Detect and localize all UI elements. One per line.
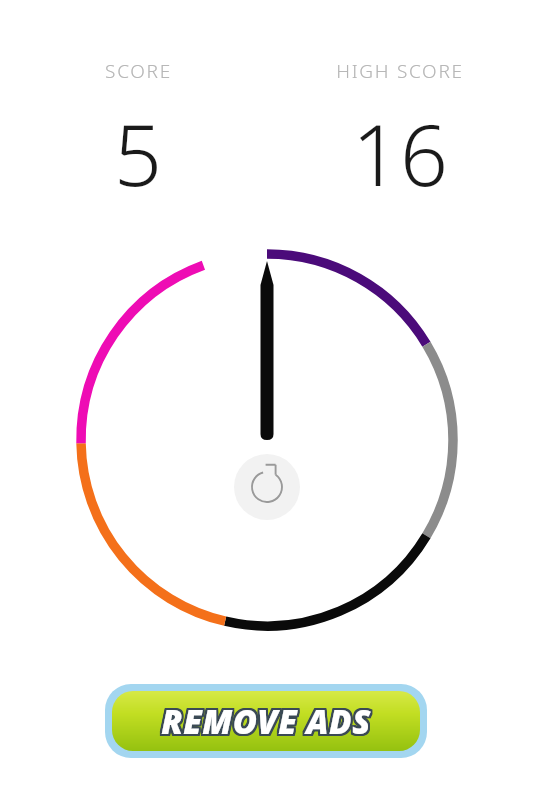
staticText: REMOVE ADS <box>161 697 371 742</box>
staticText: REMOVE ADS <box>159 697 369 742</box>
staticText: 16 <box>352 96 448 210</box>
staticText: REMOVE ADS <box>161 699 371 744</box>
staticText: REMOVE ADS <box>163 698 373 743</box>
staticText: REMOVE ADS <box>160 697 370 742</box>
staticText: 5 <box>114 96 162 210</box>
staticText: REMOVE ADS <box>159 699 369 744</box>
staticText: REMOVE ADS <box>159 698 369 743</box>
staticText: REMOVE ADS <box>163 697 373 742</box>
staticText: REMOVE ADS <box>159 700 369 745</box>
staticText: REMOVE ADS <box>162 697 372 742</box>
staticText: REMOVE ADS <box>162 701 372 746</box>
staticText: SCORE <box>105 58 172 84</box>
staticText: REMOVE ADS <box>163 701 373 746</box>
staticText: REMOVE ADS <box>161 701 371 746</box>
staticText: REMOVE ADS <box>163 700 373 745</box>
staticText: REMOVE ADS <box>163 699 373 744</box>
staticText: REMOVE ADS <box>160 701 370 746</box>
staticText: HIGH SCORE <box>336 58 464 84</box>
button[interactable]: Reset <box>234 454 300 520</box>
button[interactable]: REMOVE ADS <box>105 684 427 758</box>
staticText: REMOVE ADS <box>159 701 369 746</box>
